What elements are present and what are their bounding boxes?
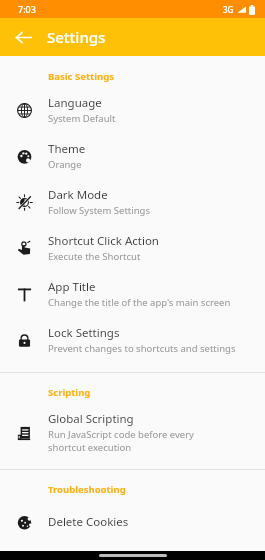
button[interactable]: App Title (0, 271, 265, 317)
button[interactable]: Global Scripting (0, 403, 265, 462)
button[interactable]: Language (0, 87, 265, 133)
staticText: Delete Cookies (48, 514, 129, 530)
staticText: Dark Mode (48, 187, 108, 203)
staticText: Scripting (48, 386, 91, 399)
button[interactable]: Dark Mode (0, 179, 265, 225)
staticText: Prevent changes to shortcuts and setting… (48, 342, 236, 355)
staticText: Execute the Shortcut (48, 250, 141, 263)
staticText: App Title (48, 279, 96, 295)
button[interactable]: Back (10, 24, 36, 50)
staticText: Basic Settings (48, 70, 114, 83)
staticText: Global Scripting (48, 411, 134, 427)
staticText: 7:03 (18, 3, 36, 15)
button[interactable]: Lock Settings (0, 317, 265, 363)
staticText: Theme (48, 141, 86, 157)
staticText: Lock Settings (48, 325, 120, 341)
staticText: Run JavaScript code before every shortcu… (48, 428, 228, 454)
button[interactable]: Theme (0, 133, 265, 179)
staticText: 3G (223, 4, 234, 15)
staticText: Language (48, 95, 102, 111)
staticText: Settings (47, 27, 106, 47)
staticText: Troubleshooting (48, 483, 126, 496)
staticText: Orange (48, 158, 82, 171)
staticText: Follow System Settings (48, 204, 150, 217)
staticText: Shortcut Click Action (48, 233, 159, 249)
button[interactable]: Delete Cookies (0, 500, 265, 544)
button[interactable]: Shortcut Click Action (0, 225, 265, 271)
staticText: System Default (48, 112, 116, 125)
staticText: Change the title of the app's main scree… (48, 296, 231, 309)
